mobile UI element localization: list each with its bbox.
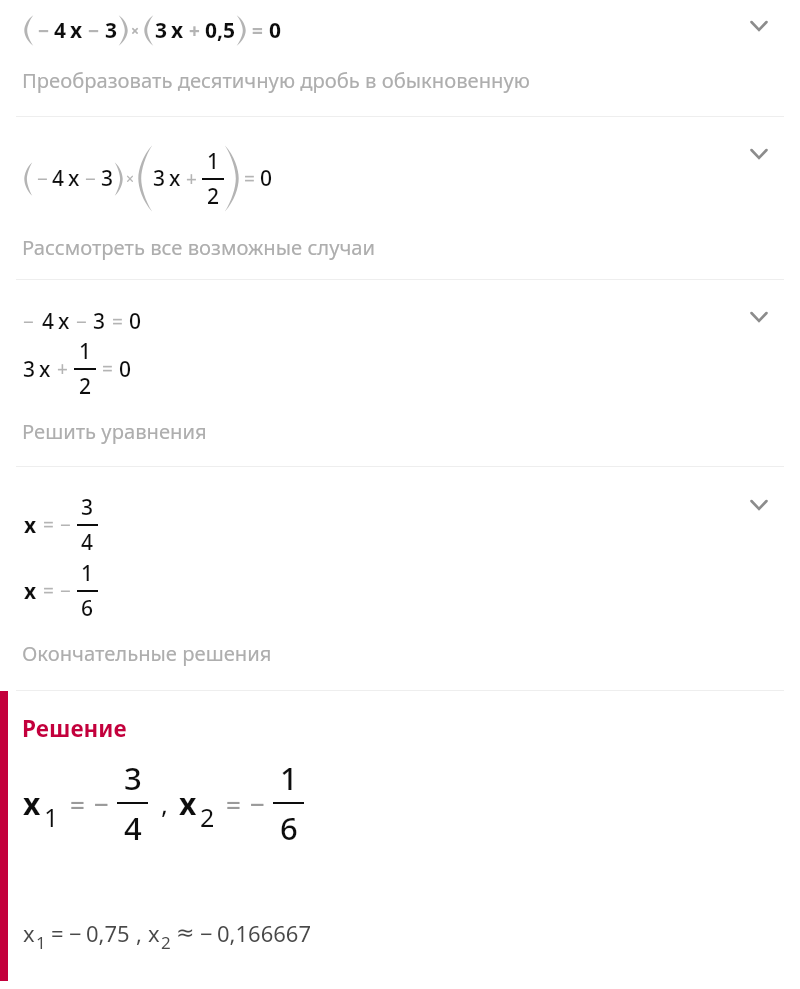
staticText: 0,166667 — [217, 918, 311, 948]
staticText: = — [226, 786, 241, 821]
staticText: − — [38, 18, 50, 44]
staticText: x — [179, 783, 197, 824]
staticText: Окончательные решения — [22, 639, 272, 667]
button[interactable]: Развернуть шаг — [736, 130, 782, 176]
staticText: x — [169, 164, 181, 193]
staticText: 0,75 — [86, 918, 130, 948]
button[interactable]: Развернуть шаг — [736, 481, 782, 527]
staticText: − — [23, 309, 34, 335]
staticText: 0 — [119, 355, 132, 384]
staticText: , — [136, 918, 142, 948]
staticText: 2 — [207, 182, 220, 211]
button[interactable]: x — [0, 467, 800, 690]
staticText: 2 — [200, 800, 215, 834]
staticText: − — [250, 786, 265, 821]
button[interactable]: − — [0, 117, 800, 279]
staticText: x — [24, 511, 37, 540]
staticText: 1 — [44, 800, 59, 834]
staticText: 2 — [161, 931, 171, 954]
staticText: − — [88, 18, 100, 44]
staticText: x — [23, 918, 35, 948]
staticText: − — [94, 786, 109, 821]
staticText: 1 — [81, 559, 94, 588]
staticText: 4 — [42, 307, 55, 336]
staticText: + — [189, 18, 200, 44]
staticText: = — [43, 578, 54, 604]
staticText: 3 — [101, 164, 114, 193]
staticText: × — [131, 21, 140, 40]
staticText: + — [186, 166, 197, 192]
staticText: Решение — [22, 713, 127, 744]
staticText: − — [76, 309, 87, 335]
staticText: 3 — [124, 757, 142, 799]
button[interactable]: Развернуть шаг — [736, 2, 782, 48]
staticText: = — [252, 18, 263, 44]
staticText: , — [161, 786, 168, 821]
staticText: = — [43, 512, 54, 538]
button[interactable]: − — [0, 0, 800, 116]
staticText: 3 — [23, 355, 36, 384]
staticText: x — [148, 918, 160, 948]
staticText: 6 — [81, 594, 94, 623]
staticText: = — [70, 786, 85, 821]
staticText: − — [69, 918, 82, 948]
staticText: Рассмотреть все возможные случаи — [22, 233, 376, 261]
staticText: 1 — [207, 147, 220, 176]
staticText: 3 — [105, 16, 118, 45]
staticText: − — [60, 578, 71, 604]
staticText: 1 — [36, 931, 46, 954]
staticText: − — [37, 166, 48, 192]
staticText: x — [70, 16, 83, 45]
staticText: − — [200, 918, 213, 948]
staticText: = — [112, 309, 123, 335]
staticText: x — [68, 164, 80, 193]
button[interactable]: Развернуть шаг — [736, 293, 782, 339]
staticText: × — [126, 169, 135, 188]
staticText: x — [23, 783, 41, 824]
staticText: Решить уравнения — [22, 417, 207, 445]
staticText: = — [244, 166, 255, 192]
staticText: 1 — [280, 757, 298, 799]
staticText: − — [60, 512, 71, 538]
button[interactable]: − — [0, 280, 800, 466]
staticText: = — [102, 356, 113, 382]
staticText: 0 — [269, 16, 282, 45]
staticText: x — [24, 577, 37, 606]
staticText: 3 — [155, 16, 168, 45]
staticText: 3 — [153, 164, 166, 193]
staticText: 4 — [52, 164, 65, 193]
staticText: 2 — [79, 372, 92, 401]
staticText: 3 — [81, 493, 94, 522]
staticText: 4 — [124, 807, 142, 849]
staticText: 6 — [280, 807, 298, 849]
staticText: 0 — [260, 164, 273, 193]
staticText: x — [171, 16, 184, 45]
staticText: 3 — [93, 307, 106, 336]
staticText: − — [85, 166, 96, 192]
staticText: + — [57, 356, 68, 382]
staticText: 4 — [54, 16, 67, 45]
staticText: Преобразовать десятичную дробь в обыкнов… — [22, 66, 530, 94]
staticText: 0 — [129, 307, 142, 336]
staticText: ≈ — [176, 920, 195, 946]
staticText: = — [51, 918, 64, 948]
staticText: x — [58, 307, 70, 336]
staticText: x — [39, 355, 51, 384]
staticText: 0,5 — [205, 16, 236, 45]
staticText: 1 — [79, 337, 92, 366]
staticText: 4 — [81, 528, 94, 557]
